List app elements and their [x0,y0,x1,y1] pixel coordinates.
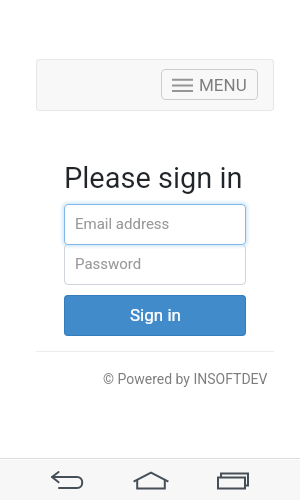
button[interactable]: Recent apps [204,460,261,500]
button[interactable]: Password [64,244,246,285]
staticText: © Powered by INSOFTDEV [103,371,268,387]
button[interactable]: Sign in [64,295,246,336]
button[interactable]: MENU [161,69,258,100]
staticText: Please sign in [64,161,243,195]
staticText: MENU [199,75,247,95]
button[interactable]: Back [39,460,96,500]
staticText: Email address [75,215,170,233]
button[interactable]: Email address [64,204,246,245]
staticText: Sign in [130,305,181,325]
staticText: Password [75,255,142,273]
button[interactable]: Home [122,460,179,500]
